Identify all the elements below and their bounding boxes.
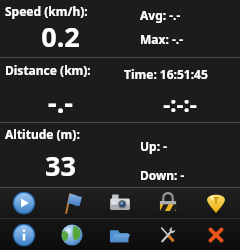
button[interactable]: Map bbox=[48, 219, 96, 250]
staticText: Up: - bbox=[140, 138, 167, 154]
staticText: Down: - bbox=[140, 167, 185, 183]
staticText: -.- bbox=[48, 84, 73, 121]
button[interactable]: Lock bbox=[144, 188, 192, 218]
button[interactable]: Camera bbox=[96, 188, 144, 218]
staticText: Avg: -.- bbox=[140, 7, 181, 23]
button[interactable]: Files bbox=[96, 219, 144, 250]
staticText: 33 bbox=[45, 147, 76, 184]
staticText: Altitude (m): bbox=[5, 126, 80, 142]
staticText: Speed (km/h): bbox=[5, 3, 88, 19]
button[interactable]: Info bbox=[0, 219, 48, 250]
staticText: Time: 16:51:45 bbox=[124, 66, 208, 82]
staticText: Distance (km): bbox=[5, 62, 91, 78]
staticText: Max: -.- bbox=[140, 31, 183, 47]
staticText: 0.2 bbox=[41, 18, 80, 55]
staticText: -:-:- bbox=[163, 88, 197, 118]
button[interactable]: Settings bbox=[144, 219, 192, 250]
button[interactable]: Exit bbox=[192, 219, 240, 250]
button[interactable]: Start bbox=[0, 188, 48, 218]
button[interactable]: Light bbox=[192, 188, 240, 218]
button[interactable]: Waypoint bbox=[48, 188, 96, 218]
